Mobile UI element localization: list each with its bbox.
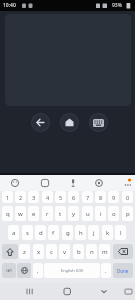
button[interactable]: 0 — [122, 191, 133, 203]
staticText: a — [12, 229, 16, 237]
button[interactable] — [0, 283, 45, 300]
staticText: e — [32, 210, 36, 218]
button[interactable]: s — [22, 225, 33, 240]
staticText: 1 — [6, 194, 10, 201]
staticText: j — [93, 229, 95, 237]
staticText: k — [106, 229, 110, 237]
staticText: y — [72, 210, 76, 218]
button[interactable]: j — [88, 225, 99, 240]
button[interactable]: o — [108, 206, 119, 221]
staticText: z — [23, 248, 26, 256]
button[interactable] — [45, 283, 90, 300]
staticText: w — [18, 210, 23, 218]
staticText: 93% — [112, 2, 122, 9]
staticText: p — [126, 210, 130, 218]
staticText: b — [77, 248, 81, 256]
staticText: l — [120, 229, 122, 237]
button[interactable]: 5 — [55, 191, 66, 203]
staticText: u — [86, 210, 90, 218]
button[interactable]: x — [33, 244, 44, 259]
staticText: t — [59, 210, 62, 218]
staticText: v — [63, 248, 67, 256]
button[interactable]: w — [15, 206, 26, 221]
button[interactable]: d — [35, 225, 46, 240]
button[interactable]: 7 — [82, 191, 93, 203]
button[interactable]: m — [99, 244, 110, 259]
button[interactable]: 3 — [28, 191, 39, 203]
button[interactable]: f — [48, 225, 59, 240]
button[interactable]: 4 — [42, 191, 53, 203]
button[interactable]: English (US) — [44, 263, 100, 278]
staticText: English (US) — [61, 268, 84, 273]
staticText: 5 — [59, 194, 63, 201]
staticText: 2 — [19, 194, 23, 201]
staticText: 0 — [126, 194, 130, 201]
button[interactable]: h — [75, 225, 86, 240]
button[interactable]: 6 — [68, 191, 79, 203]
button[interactable]: g — [62, 225, 73, 240]
button[interactable]: 9 — [108, 191, 119, 203]
button[interactable]: z — [19, 244, 30, 259]
button[interactable] — [90, 283, 135, 300]
button[interactable]: k — [102, 225, 113, 240]
staticText: x — [37, 248, 41, 256]
button[interactable]: v — [59, 244, 70, 259]
staticText: i — [100, 210, 102, 218]
staticText: q — [6, 210, 10, 218]
staticText: c — [50, 248, 53, 256]
button[interactable] — [31, 113, 50, 132]
staticText: r — [46, 210, 49, 218]
staticText: h — [79, 229, 83, 237]
button[interactable]: c — [46, 244, 57, 259]
staticText: 6 — [72, 194, 76, 201]
button[interactable]: Done — [113, 263, 133, 278]
staticText: 7 — [86, 194, 90, 201]
button[interactable]: 1 — [2, 191, 13, 203]
button[interactable]: e — [28, 206, 39, 221]
button[interactable]: r — [42, 206, 53, 221]
button[interactable]: . — [101, 263, 111, 278]
button[interactable]: 2 — [15, 191, 26, 203]
staticText: n — [90, 248, 94, 256]
button[interactable]: y — [68, 206, 79, 221]
button[interactable]: t — [55, 206, 66, 221]
button[interactable] — [17, 263, 31, 278]
button[interactable]: b — [73, 244, 84, 259]
button[interactable] — [60, 113, 79, 132]
button[interactable] — [89, 113, 108, 132]
staticText: g — [66, 229, 70, 237]
button[interactable]: 8 — [95, 191, 106, 203]
staticText: f — [52, 229, 55, 237]
staticText: s — [26, 229, 29, 237]
button[interactable]: l — [115, 225, 126, 240]
staticText: Done — [117, 268, 129, 274]
staticText: 3 — [32, 194, 36, 201]
staticText: . — [105, 267, 107, 275]
button[interactable] — [2, 244, 18, 259]
staticText: 4 — [46, 194, 50, 201]
button[interactable] — [113, 244, 133, 259]
button[interactable]: u — [82, 206, 93, 221]
button[interactable]: a — [8, 225, 19, 240]
button[interactable]: n — [86, 244, 97, 259]
button[interactable]: q — [2, 206, 13, 221]
button[interactable]: i — [95, 206, 106, 221]
staticText: 9 — [112, 194, 116, 201]
button[interactable]: p — [122, 206, 133, 221]
staticText: m — [102, 248, 108, 256]
staticText: 10:40 — [3, 2, 16, 9]
staticText: d — [39, 229, 43, 237]
staticText: 8 — [99, 194, 103, 201]
button[interactable]: !#1 — [2, 263, 16, 278]
staticText: o — [112, 210, 116, 218]
staticText: !#1 — [6, 268, 13, 274]
button[interactable]: , — [33, 263, 43, 278]
staticText: , — [37, 267, 39, 275]
